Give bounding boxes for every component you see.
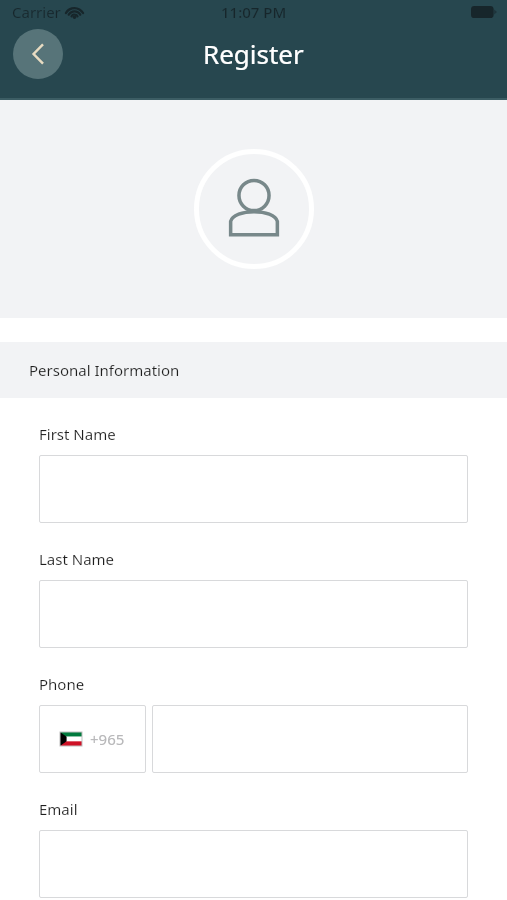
button[interactable]: Back xyxy=(13,29,63,79)
button[interactable] xyxy=(39,830,468,898)
staticText: Register xyxy=(203,36,304,71)
button[interactable] xyxy=(152,705,468,773)
staticText: Carrier xyxy=(12,2,61,22)
staticText: Phone xyxy=(39,674,85,694)
staticText: Email xyxy=(39,799,78,819)
button[interactable] xyxy=(39,455,468,523)
staticText: 11:07 PM xyxy=(221,2,287,22)
button[interactable]: Select country code xyxy=(39,705,146,773)
staticText: First Name xyxy=(39,424,116,444)
staticText: Last Name xyxy=(39,549,115,569)
staticText: +965 xyxy=(90,729,125,749)
staticText: Personal Information xyxy=(29,360,180,380)
button[interactable] xyxy=(39,580,468,648)
